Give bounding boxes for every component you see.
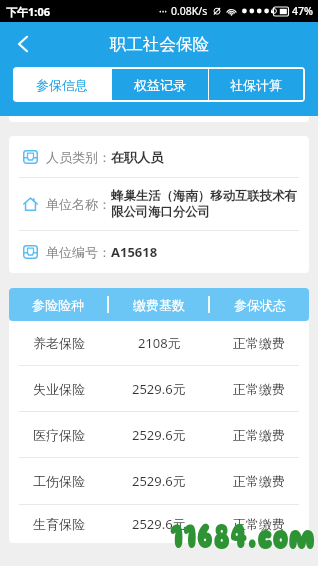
button[interactable]: 失业保险 [9, 366, 309, 411]
staticText: 0.08K/s [171, 4, 208, 18]
staticText: 生育保险 [33, 516, 85, 532]
button[interactable]: 权益记录 [112, 69, 208, 100]
staticText: 人员类别： [46, 149, 111, 165]
staticText: 单位名称： [46, 196, 111, 212]
staticText: 在职人员 [111, 149, 163, 165]
button[interactable]: 社保计算 [209, 69, 303, 100]
staticText: 权益记录 [134, 77, 186, 93]
staticText: 2108元 [138, 334, 181, 352]
staticText: 2529.6元 [132, 426, 186, 444]
staticText: ··· [159, 4, 168, 18]
button[interactable]: 生育保险 [9, 505, 309, 543]
staticText: 蜂巢生活（海南）移动互联技术有限公司海口分公司 [111, 188, 306, 220]
staticText: 工伤保险 [33, 473, 85, 489]
staticText: 11684.com [170, 515, 316, 558]
staticText: 参保信息 [36, 77, 88, 93]
button[interactable]: 参保信息 [13, 69, 111, 100]
staticText: 正常缴费 [233, 381, 285, 397]
staticText: A15618 [111, 243, 158, 261]
staticText: 失业保险 [33, 381, 85, 397]
button[interactable]: 养老保险 [9, 321, 309, 365]
staticText: 参险险种 [32, 297, 84, 313]
button[interactable]: 医疗保险 [9, 412, 309, 457]
staticText: 单位编号： [46, 244, 111, 260]
staticText: 正常缴费 [233, 473, 285, 489]
staticText: 养老保险 [33, 335, 85, 351]
staticText: 职工社会保险 [110, 34, 209, 55]
staticText: 正常缴费 [233, 516, 285, 532]
staticText: 参保状态 [234, 297, 286, 313]
staticText: 2529.6元 [132, 472, 186, 490]
button[interactable]: 工伤保险 [9, 458, 309, 504]
staticText: 医疗保险 [33, 427, 85, 443]
staticText: 47% [292, 4, 313, 18]
staticText: 正常缴费 [233, 427, 285, 443]
staticText: 2529.6元 [132, 380, 186, 398]
staticText: 下午1:06 [6, 4, 50, 19]
button[interactable]: Back [0, 22, 46, 66]
staticText: 2529.6元 [132, 515, 186, 533]
staticText: 社保计算 [230, 77, 282, 93]
staticText: 缴费基数 [133, 297, 185, 313]
staticText: 正常缴费 [233, 335, 285, 351]
